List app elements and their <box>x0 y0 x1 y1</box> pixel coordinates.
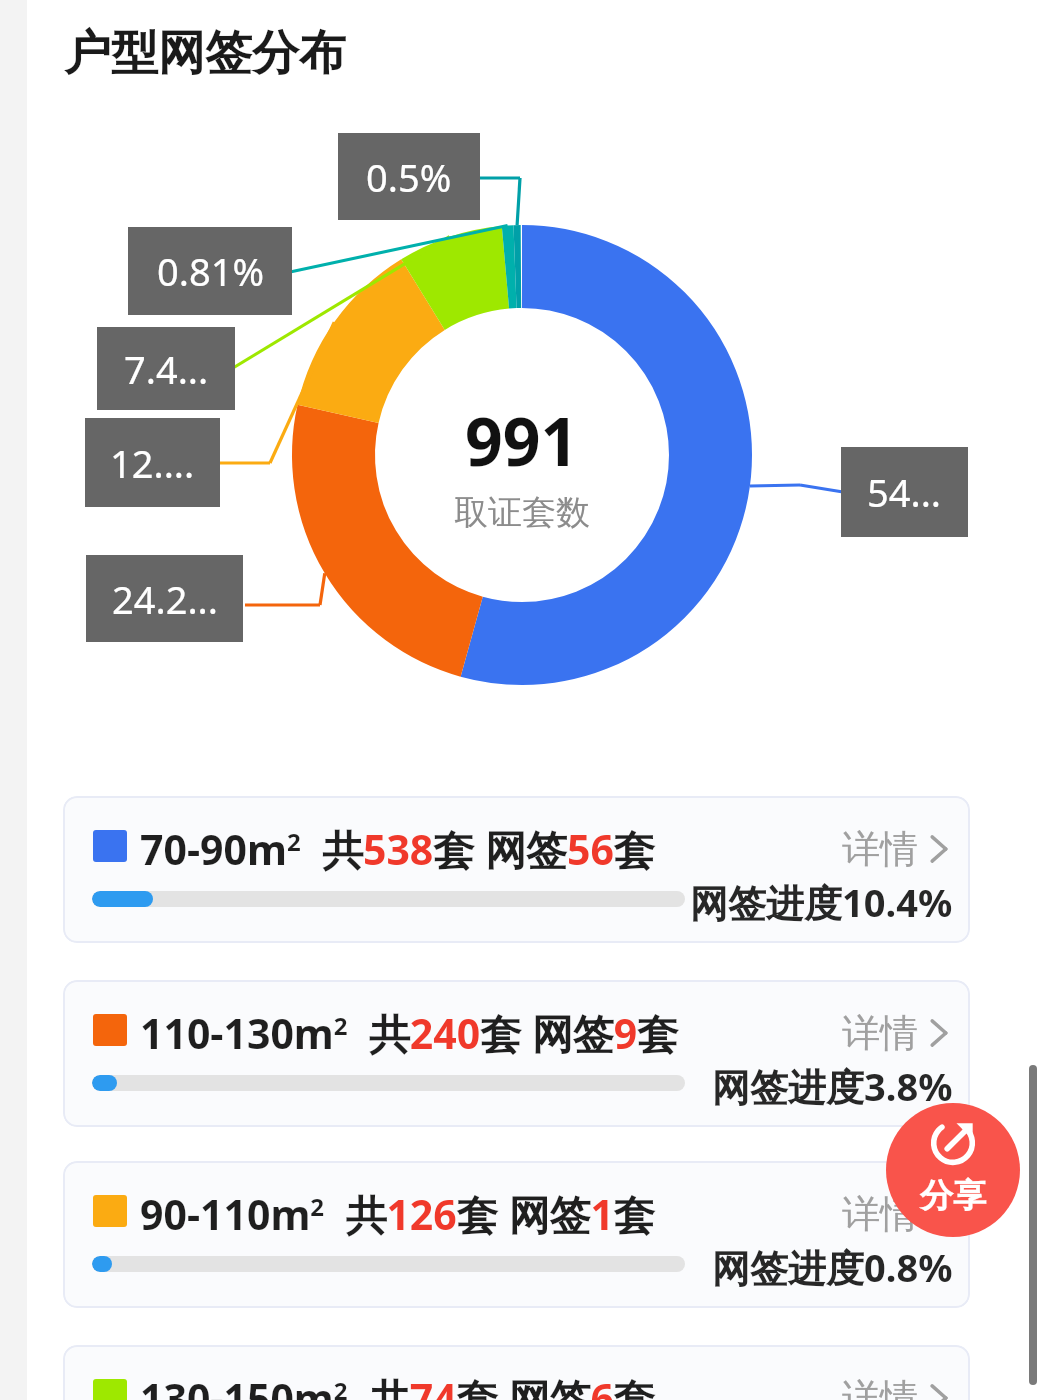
staticText: 90-110m2 共126套 网签1套 <box>140 1186 655 1242</box>
staticText: 详情 <box>842 825 918 873</box>
button[interactable]: 详情 <box>842 1374 948 1400</box>
staticText: 7.4... <box>124 343 209 395</box>
staticText: 网签进度3.8% <box>712 1060 953 1112</box>
staticText: 0.5% <box>366 151 452 203</box>
staticText: 详情 <box>842 1374 918 1400</box>
staticText: 110-130m2 共240套 网签9套 <box>140 1005 679 1061</box>
staticText: 54... <box>867 466 942 518</box>
staticText: 网签进度0.8% <box>712 1241 953 1293</box>
staticText: 70-90m2 共538套 网签56套 <box>140 821 655 877</box>
staticText: 详情 <box>842 1190 918 1238</box>
staticText: 991 <box>465 395 579 485</box>
button[interactable]: 详情 <box>842 1009 948 1057</box>
staticText: 户型网签分布 <box>64 24 346 83</box>
staticText: 取证套数 <box>454 491 590 534</box>
button[interactable]: 70-90m2 共538套 网签56套 <box>63 796 970 943</box>
staticText: 12.... <box>110 437 195 489</box>
button[interactable]: 90-110m2 共126套 网签1套 <box>63 1161 970 1308</box>
staticText: 网签进度10.4% <box>690 876 953 928</box>
staticText: 24.2... <box>112 573 218 625</box>
button[interactable]: 详情 <box>842 825 948 873</box>
staticText: 详情 <box>842 1009 918 1057</box>
button[interactable]: 110-130m2 共240套 网签9套 <box>63 980 970 1127</box>
button[interactable]: 详情 <box>842 1190 948 1238</box>
staticText: 分享 <box>920 1175 986 1217</box>
button[interactable]: 分享 <box>886 1103 1020 1237</box>
button[interactable]: 130-150m2 共74套 网签6套 <box>63 1345 970 1400</box>
staticText: 0.81% <box>157 245 264 297</box>
staticText: 130-150m2 共74套 网签6套 <box>140 1370 655 1400</box>
